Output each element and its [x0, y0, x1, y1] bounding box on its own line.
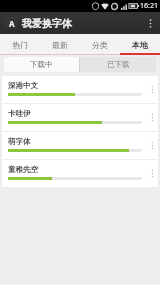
button[interactable]: 分类	[80, 34, 120, 55]
staticText: A	[9, 18, 15, 29]
button[interactable]: 已下载	[80, 57, 156, 72]
button[interactable]: 童稚先空	[2, 160, 158, 187]
button[interactable]: Item options for 童稚先空	[146, 160, 158, 187]
staticText: 卡哇伊	[8, 109, 31, 118]
staticText: 16:21	[140, 1, 158, 11]
button[interactable]: 下载中	[4, 57, 79, 72]
staticText: 深港中文	[8, 81, 38, 90]
button[interactable]: 最新	[40, 34, 80, 55]
staticText: 我爱换字体	[22, 17, 72, 30]
staticText: 下载中	[30, 60, 53, 69]
button[interactable]: 萌字体	[2, 132, 158, 159]
button[interactable]: More options	[143, 12, 157, 34]
button[interactable]: Item options for 深港中文	[146, 76, 158, 103]
staticText: 本地	[132, 40, 148, 50]
button[interactable]: Item options for 萌字体	[146, 132, 158, 159]
staticText: 童稚先空	[8, 165, 38, 174]
button[interactable]: 热门	[0, 34, 40, 55]
button[interactable]: 卡哇伊	[2, 104, 158, 131]
button[interactable]: Item options for 卡哇伊	[146, 104, 158, 131]
button[interactable]: 深港中文	[2, 76, 158, 103]
staticText: 最新	[52, 40, 68, 50]
button[interactable]: 本地	[120, 34, 160, 55]
staticText: 萌字体	[8, 137, 31, 146]
staticText: 热门	[12, 40, 28, 50]
staticText: 分类	[92, 40, 108, 50]
staticText: 已下载	[107, 60, 130, 69]
